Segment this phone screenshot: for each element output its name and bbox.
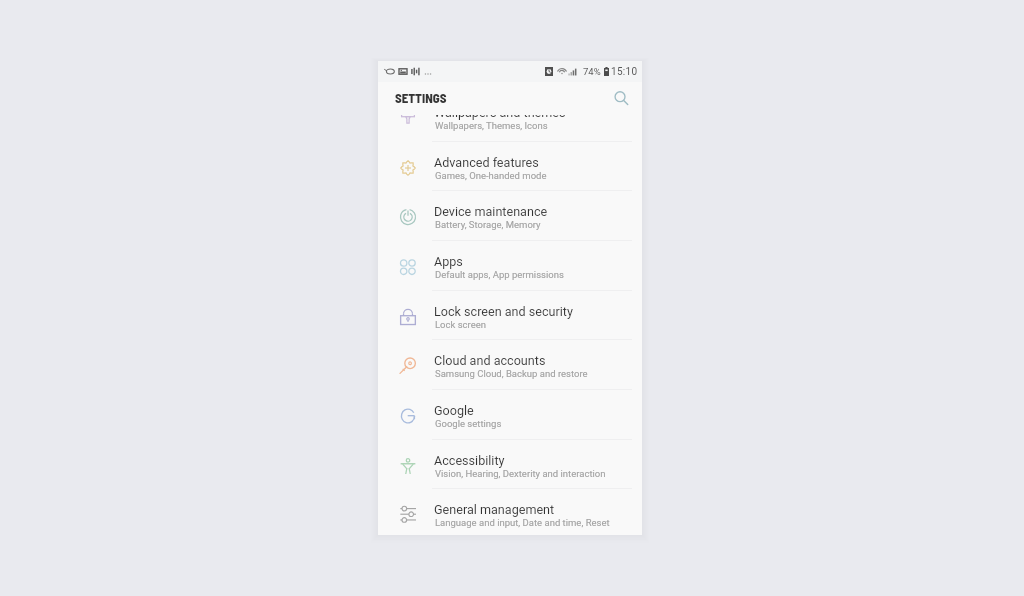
staticText: 15:10 bbox=[611, 66, 638, 78]
staticText: Samsung Cloud, Backup and restore bbox=[435, 368, 588, 379]
button[interactable]: Device maintenance bbox=[378, 191, 642, 241]
staticText: Accessibility bbox=[434, 453, 505, 468]
staticText: General management bbox=[434, 502, 555, 517]
staticText: Games, One-handed mode bbox=[435, 170, 547, 181]
staticText: Cloud and accounts bbox=[434, 353, 546, 368]
button[interactable]: Wallpapers and themes bbox=[378, 114, 642, 142]
staticText: Language and input, Date and time, Reset bbox=[435, 517, 610, 528]
staticText: Google settings bbox=[435, 418, 502, 429]
staticText: Vision, Hearing, Dexterity and interacti… bbox=[435, 468, 606, 479]
staticText: Apps bbox=[434, 254, 463, 269]
button[interactable]: Accessibility bbox=[378, 440, 642, 490]
button[interactable]: General management bbox=[378, 489, 642, 535]
staticText: Lock screen bbox=[435, 319, 487, 330]
button[interactable]: Cloud and accounts bbox=[378, 340, 642, 390]
button[interactable]: Search bbox=[607, 84, 635, 112]
staticText: 74% bbox=[583, 66, 601, 77]
staticText: Wallpapers and themes bbox=[434, 114, 566, 120]
button[interactable]: Lock screen and security bbox=[378, 291, 642, 341]
staticText: Device maintenance bbox=[434, 204, 548, 219]
button[interactable]: Advanced features bbox=[378, 142, 642, 192]
staticText: Battery, Storage, Memory bbox=[435, 219, 541, 230]
button[interactable]: Apps bbox=[378, 241, 642, 291]
button[interactable]: Google bbox=[378, 390, 642, 440]
staticText: Google bbox=[434, 403, 474, 418]
staticText: Lock screen and security bbox=[434, 304, 573, 319]
staticText: SETTINGS bbox=[395, 90, 447, 105]
staticText: Default apps, App permissions bbox=[435, 269, 564, 280]
staticText: Advanced features bbox=[434, 155, 539, 170]
staticText: Wallpapers, Themes, Icons bbox=[435, 120, 548, 131]
